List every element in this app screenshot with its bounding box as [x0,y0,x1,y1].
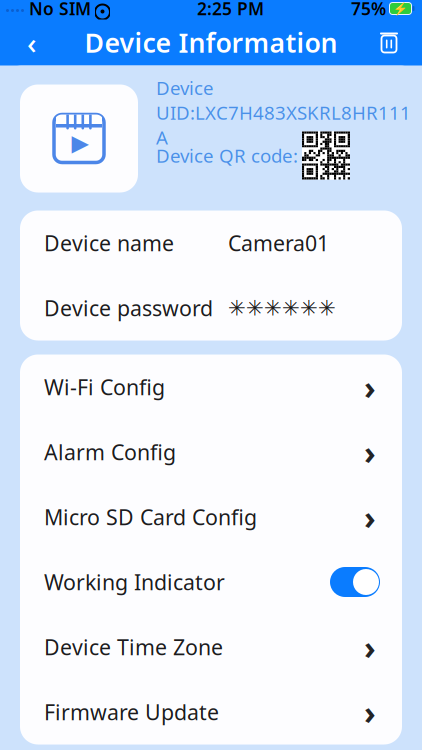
staticText: 2:25 PM [197,0,264,20]
button[interactable]: Device name [20,210,402,275]
staticText: Device UID:LXC7H483XSKRL8HR111A [156,75,411,150]
staticText: ✳✳✳✳✳✳ [228,296,336,320]
button[interactable]: Device Time Zone [20,614,402,679]
staticText: Alarm Config [44,438,176,466]
staticText: 75% [351,0,386,20]
staticText: › [364,496,376,538]
staticText: ▶ [71,130,88,156]
staticText: › [364,366,376,408]
button[interactable]: Delete device [374,20,404,64]
button[interactable]: Alarm Config [20,419,402,484]
staticText: Wi-Fi Config [44,373,165,401]
staticText: No SIM [29,0,91,20]
staticText: Micro SD Card Config [44,503,257,531]
button[interactable]: Wi-Fi Config [20,354,402,419]
button[interactable]: Firmware Update [20,679,402,744]
staticText: Firmware Update [44,698,219,726]
staticText: Device name [44,229,174,257]
staticText: Device Time Zone [44,633,223,661]
staticText: Working Indicator [44,568,225,596]
staticText: ⚡ [393,2,408,15]
button[interactable]: Micro SD Card Config [20,484,402,549]
staticText: › [364,626,376,668]
staticText: Camera01 [228,229,329,257]
staticText: › [364,431,376,473]
button[interactable]: Working Indicator [20,549,402,614]
staticText: ‹ [27,23,37,62]
button[interactable]: Back [18,20,46,64]
staticText: › [364,691,376,733]
button[interactable]: Device password [20,275,402,340]
staticText: Device QR code: [156,143,298,168]
staticText: Device Information [84,25,337,60]
staticText: Device password [44,294,213,322]
